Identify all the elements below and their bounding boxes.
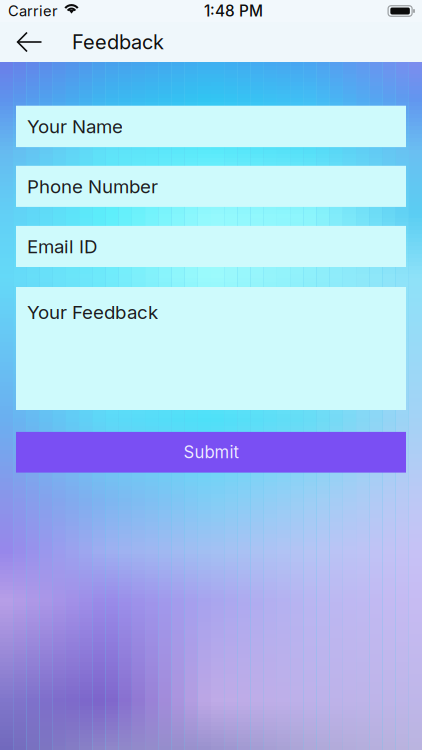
- staticText: Submit: [183, 442, 238, 462]
- staticText: Carrier: [8, 2, 58, 20]
- button[interactable]: Back: [0, 22, 72, 62]
- button[interactable]: Submit: [16, 432, 406, 473]
- staticText: Phone Number: [27, 175, 158, 198]
- staticText: Your Name: [27, 115, 123, 138]
- staticText: Your Feedback: [27, 301, 158, 324]
- staticText: 1:48 PM: [204, 2, 263, 20]
- staticText: Feedback: [72, 30, 164, 54]
- staticText: Email ID: [27, 235, 97, 258]
